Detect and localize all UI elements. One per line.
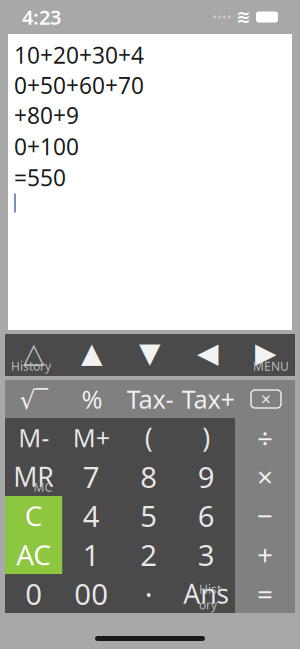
staticText: 0 — [25, 574, 42, 613]
staticText: History — [199, 581, 225, 613]
button[interactable]: 00 — [62, 574, 120, 613]
button[interactable]: 2 — [120, 535, 177, 574]
staticText: △ — [23, 337, 45, 369]
button[interactable]: 4 — [62, 496, 120, 535]
button[interactable]: Divide — [235, 418, 295, 457]
staticText: × — [261, 387, 271, 410]
button[interactable]: 5 — [120, 496, 177, 535]
staticText: MC — [33, 479, 52, 495]
button[interactable]: 8 — [120, 457, 177, 496]
staticText: History — [11, 358, 51, 374]
staticText: 10+20+30+40+50+60+70+80+9 — [14, 40, 144, 130]
staticText: Ans — [183, 576, 229, 611]
staticText: 0+100 — [14, 131, 79, 161]
staticText: 4 — [83, 496, 100, 535]
staticText: ÷ — [257, 419, 273, 456]
button[interactable]: Down — [121, 334, 179, 376]
button[interactable]: History — [5, 334, 63, 376]
staticText: 3 — [198, 535, 215, 574]
button[interactable]: ( — [120, 418, 177, 457]
button[interactable]: M- — [5, 418, 62, 457]
button[interactable]: 7 — [62, 457, 120, 496]
button[interactable]: M+ — [62, 418, 120, 457]
button[interactable]: Tax- — [121, 380, 179, 418]
button[interactable]: % — [63, 380, 121, 418]
staticText: + — [257, 536, 273, 573]
staticText: MR — [13, 459, 54, 494]
button[interactable]: AC — [5, 535, 62, 574]
button[interactable]: · — [120, 574, 177, 613]
button[interactable]: 6 — [177, 496, 235, 535]
staticText: M+ — [73, 421, 110, 454]
staticText: ▼ — [139, 337, 161, 369]
staticText: ◀ — [197, 337, 219, 369]
staticText: 1 — [83, 535, 100, 574]
staticText: 4:23 — [22, 4, 61, 30]
staticText: 8 — [140, 457, 157, 496]
staticText: 9 — [198, 457, 215, 496]
staticText: C — [25, 497, 43, 534]
staticText: · — [145, 574, 153, 613]
staticText: 7 — [83, 457, 100, 496]
button[interactable]: 1 — [62, 535, 120, 574]
staticText: 2 — [140, 535, 157, 574]
staticText: Tax+ — [181, 382, 234, 416]
button[interactable]: ) — [177, 418, 235, 457]
button[interactable]: Menu — [237, 334, 295, 376]
staticText: 6 — [198, 496, 215, 535]
staticText: − — [257, 497, 273, 534]
button[interactable]: Subtract — [235, 496, 295, 535]
button[interactable]: 9 — [177, 457, 235, 496]
button[interactable]: 0 — [5, 574, 62, 613]
staticText: AC — [16, 536, 51, 573]
staticText: = — [257, 575, 273, 612]
staticText: ) — [202, 420, 210, 455]
button[interactable]: Add — [235, 535, 295, 574]
staticText: ≋ — [236, 7, 251, 27]
button[interactable]: Left — [179, 334, 237, 376]
staticText: ▲ — [81, 337, 103, 369]
staticText: 5 — [140, 496, 157, 535]
staticText: =550 — [14, 162, 66, 192]
staticText: × — [257, 458, 273, 495]
staticText: ▶ — [255, 337, 277, 369]
staticText: √‾ — [19, 382, 48, 416]
staticText: M- — [18, 421, 49, 454]
staticText: % — [81, 382, 102, 416]
button[interactable]: Up — [63, 334, 121, 376]
staticText: ( — [145, 420, 153, 455]
button[interactable]: Multiply — [235, 457, 295, 496]
staticText: Tax- — [126, 382, 173, 416]
button[interactable]: Equals — [235, 574, 295, 613]
button[interactable]: Tax+ — [179, 380, 237, 418]
button[interactable]: 3 — [177, 535, 235, 574]
button[interactable]: C — [5, 496, 62, 535]
button[interactable]: √‾ — [5, 380, 63, 418]
staticText: 00 — [74, 574, 108, 613]
button[interactable]: MR — [5, 457, 62, 496]
button[interactable]: Ans — [177, 574, 235, 613]
button[interactable]: Delete — [237, 380, 295, 418]
staticText: MENU — [253, 358, 289, 374]
